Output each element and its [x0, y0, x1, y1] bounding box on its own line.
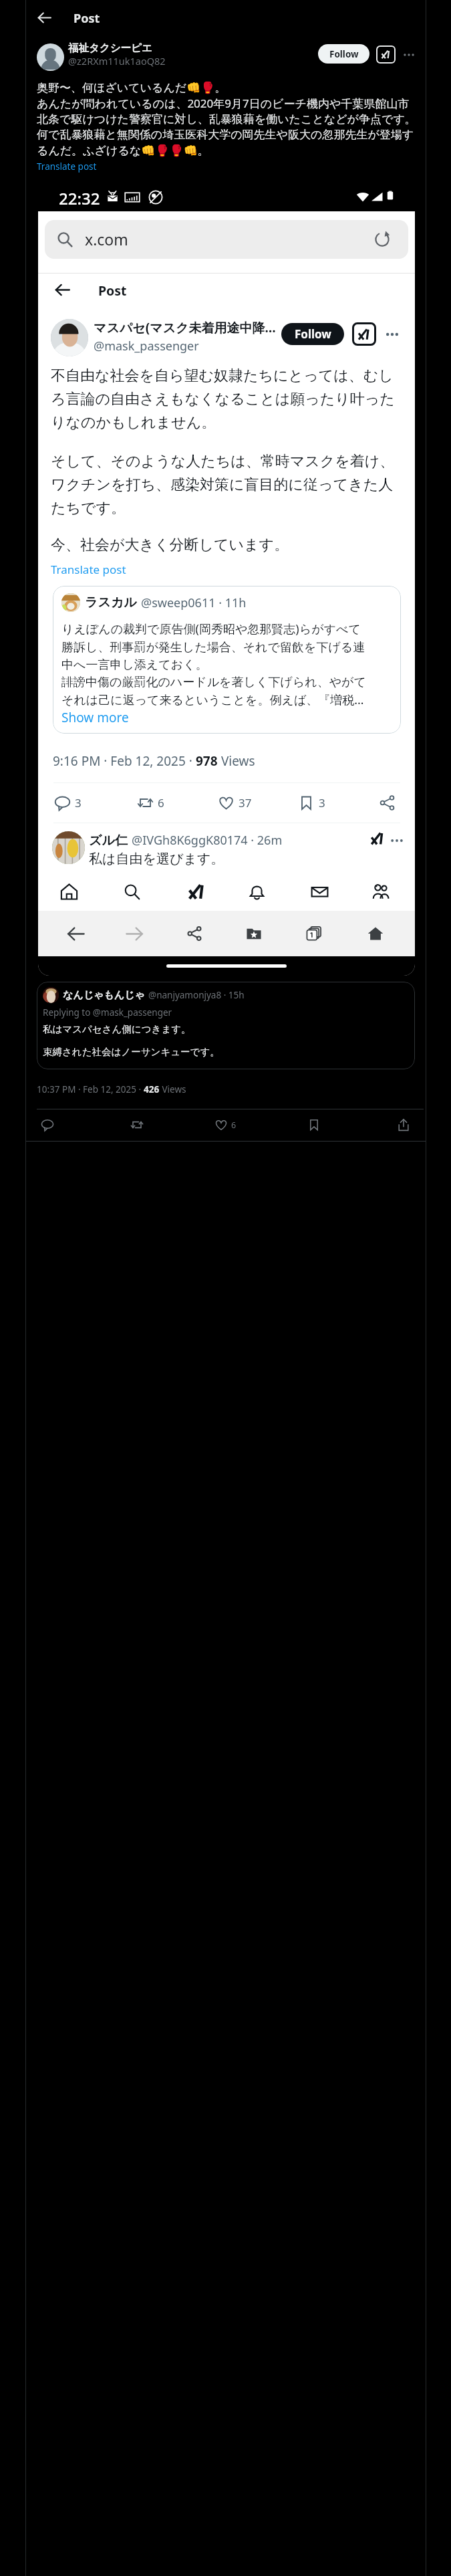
button[interactable]: Share — [394, 1115, 413, 1134]
button[interactable]: Translate post — [37, 160, 97, 173]
staticText: 10:37 PM · Feb 12, 2025 · — [37, 1083, 144, 1095]
staticText: 不自由な社会を自ら望む奴隷たちにとっては、むし ろ言論の自由さえもなくなることは… — [51, 366, 395, 432]
staticText: ラスカル — [85, 595, 137, 611]
staticText: なんじゃもんじゃ — [63, 989, 145, 1002]
staticText: 今、社会が大きく分断しています。 — [51, 536, 289, 554]
button[interactable]: Reply — [54, 792, 82, 813]
button[interactable]: Follow — [281, 323, 344, 345]
staticText: 私はマスパセさん側につきます。 — [43, 1023, 191, 1035]
button[interactable]: なんじゃもんじゃ — [37, 982, 415, 1069]
button[interactable]: Grok — [183, 878, 210, 905]
staticText: 6 — [231, 1119, 237, 1131]
button[interactable]: Translate post — [51, 562, 126, 577]
button[interactable]: Home — [362, 920, 389, 947]
staticText: Views — [160, 1083, 186, 1095]
button[interactable]: Repost — [128, 1115, 146, 1134]
button[interactable]: Back — [32, 5, 56, 29]
button[interactable]: Tabs — [301, 920, 327, 947]
button[interactable]: Share — [181, 920, 208, 947]
button[interactable]: More options — [404, 51, 414, 58]
staticText: @nanjyamonjya8 · 15h — [148, 989, 245, 1001]
staticText: @mask_passenger — [94, 338, 199, 354]
staticText: 6 — [158, 795, 164, 811]
button[interactable]: Follow — [318, 44, 369, 64]
button[interactable]: Like — [214, 1115, 237, 1134]
staticText: そして、そのような人たちは、常時マスクを着け、 ワクチンを打ち、感染対策に盲目的… — [51, 452, 395, 518]
staticText: Follow — [295, 326, 331, 342]
button[interactable]: Communities — [367, 878, 394, 905]
button[interactable]: Bookmarks — [241, 920, 267, 947]
staticText: 978 — [196, 752, 218, 770]
staticText: @z2RXm11uk1aoQ82 — [68, 54, 166, 68]
button[interactable]: Home — [55, 878, 82, 905]
staticText: 奥野〜、何ほざいているんだ👊🥊。 あんたが問われているのは、2020年9月7日の… — [37, 81, 416, 158]
staticText: 37 — [239, 795, 252, 811]
staticText: りえぼんの裁判で原告側(岡秀昭や忽那賢志)らがすべて 勝訴し、刑事罰が発生した場… — [61, 621, 366, 708]
staticText: @IVGh8K6ggK80174 · 26m — [132, 832, 283, 849]
button[interactable]: x.com — [45, 220, 408, 259]
staticText: Show more — [61, 709, 129, 726]
staticText: Translate post — [51, 562, 126, 577]
staticText: 3 — [75, 795, 82, 811]
button[interactable]: Forward — [121, 920, 148, 947]
button[interactable]: Notifications — [243, 878, 270, 905]
staticText: x.com — [85, 229, 128, 249]
button[interactable]: More options — [386, 330, 398, 338]
staticText: Replying to @mask_passenger — [43, 1006, 172, 1018]
staticText: Views — [218, 752, 255, 770]
staticText: Translate post — [37, 160, 97, 173]
staticText: ズル仁 — [89, 833, 128, 849]
button[interactable]: Bookmark — [305, 1115, 323, 1134]
staticText: マスパセ(マスク未着用途中降… — [94, 319, 276, 336]
staticText: 22:32 — [59, 187, 100, 209]
staticText: 福祉タクシーピエ — [68, 41, 152, 55]
staticText: Post — [98, 282, 127, 300]
button[interactable]: Messages — [306, 878, 333, 905]
staticText: 束縛された社会はノーサンキューです。 — [43, 1046, 220, 1058]
button[interactable]: Search — [118, 878, 145, 905]
staticText: 3 — [319, 795, 325, 811]
staticText: Post — [73, 10, 100, 27]
button[interactable]: Bookmark — [298, 792, 325, 813]
button[interactable]: Repost — [137, 792, 164, 813]
button[interactable]: Back — [52, 280, 72, 300]
button[interactable]: Share — [379, 792, 396, 813]
button[interactable]: Grok — [376, 45, 396, 64]
button[interactable]: Back — [62, 920, 89, 947]
staticText: 426 — [144, 1083, 160, 1095]
staticText: 私は自由を選びます。 — [89, 851, 224, 867]
button[interactable]: Grok — [352, 322, 376, 346]
staticText: @sweep0611 · 11h — [141, 595, 247, 611]
staticText: Follow — [329, 48, 359, 60]
staticText: 9:16 PM · Feb 12, 2025 · — [53, 752, 196, 770]
button[interactable]: ラスカル — [53, 586, 401, 734]
button[interactable]: Like — [218, 792, 252, 813]
button[interactable]: Reply — [38, 1115, 57, 1134]
